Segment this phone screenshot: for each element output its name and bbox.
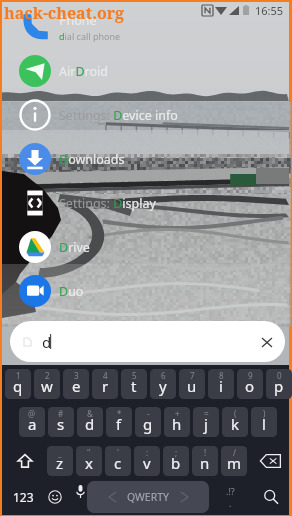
staticText: * <box>117 408 122 419</box>
button[interactable]: Backspace <box>250 446 291 476</box>
staticText: Drive <box>59 239 90 256</box>
button[interactable]: Duo <box>2 269 289 313</box>
staticText: dial call phone <box>59 30 121 42</box>
staticText: ' <box>117 447 119 458</box>
staticText: 8 <box>219 370 224 381</box>
staticText: g <box>143 414 153 434</box>
button[interactable]: 1 <box>5 369 31 399</box>
staticText: + <box>175 408 180 419</box>
button[interactable]: Settings: Display <box>2 181 289 225</box>
button[interactable]: QWERTY <box>87 481 209 513</box>
button[interactable]: 6 <box>150 369 176 399</box>
button[interactable]: ( <box>222 407 248 437</box>
button[interactable]: d <box>10 321 285 362</box>
button[interactable]: Shift <box>5 446 44 476</box>
staticText: f <box>116 414 122 434</box>
button[interactable]: 7 <box>179 369 205 399</box>
staticText: Settings: Display <box>59 195 156 212</box>
staticText: c <box>114 453 122 473</box>
staticText: AirDroid <box>59 63 108 80</box>
button[interactable]: + <box>164 407 190 437</box>
button[interactable]: ) <box>251 407 277 437</box>
staticText: y <box>159 376 167 396</box>
staticText: 5 <box>132 370 137 381</box>
staticText: m <box>227 453 242 473</box>
button[interactable]: AirDroid <box>2 49 289 93</box>
staticText: 7 <box>190 370 195 381</box>
staticText: _ <box>58 447 62 458</box>
button[interactable]: - <box>135 407 161 437</box>
button[interactable]: Downloads <box>2 137 289 181</box>
button[interactable]: " <box>76 446 102 476</box>
staticText: 123 <box>13 489 34 505</box>
staticText: .!? <box>226 485 235 497</box>
staticText: @ <box>28 408 36 419</box>
button[interactable]: ; <box>163 446 189 476</box>
staticText: r <box>102 376 109 396</box>
staticText: 4 <box>103 370 108 381</box>
button[interactable]: : <box>134 446 160 476</box>
staticText: 1 <box>16 370 21 381</box>
button[interactable]: 9 <box>237 369 263 399</box>
staticText: ) <box>263 408 266 419</box>
staticText: l <box>262 414 266 434</box>
staticText: # <box>58 408 64 419</box>
staticText: 2 <box>45 370 50 381</box>
staticText: = <box>204 408 209 419</box>
button[interactable]: Drive <box>2 225 289 269</box>
button[interactable]: Voice input <box>69 477 91 505</box>
button[interactable]: & <box>77 407 103 437</box>
staticText: ( <box>234 408 237 419</box>
staticText: h <box>172 414 182 434</box>
button[interactable]: Clear search <box>252 327 282 357</box>
staticText: q <box>13 376 23 396</box>
staticText: o <box>245 376 255 396</box>
staticText: k <box>231 414 240 434</box>
staticText: 3 <box>74 370 79 381</box>
staticText: . <box>229 497 232 509</box>
button[interactable]: * <box>106 407 132 437</box>
button[interactable]: 0 <box>266 369 292 399</box>
button[interactable]: 8 <box>208 369 234 399</box>
staticText: e <box>72 376 81 396</box>
button[interactable]: Emoji <box>41 482 69 512</box>
button[interactable]: Settings: Device info <box>2 93 289 137</box>
staticText: i <box>219 376 223 396</box>
staticText: t <box>131 376 137 396</box>
button[interactable]: Phone <box>2 5 289 49</box>
button[interactable]: ' <box>105 446 131 476</box>
button[interactable]: _ <box>47 446 73 476</box>
staticText: 0 <box>277 370 282 381</box>
button[interactable]: 5 <box>121 369 147 399</box>
button[interactable]: .!? <box>209 482 251 512</box>
staticText: j <box>204 414 208 434</box>
button[interactable]: # <box>48 407 74 437</box>
button[interactable]: = <box>193 407 219 437</box>
staticText: d <box>85 414 95 434</box>
staticText: Downloads <box>59 151 125 168</box>
staticText: Duo <box>59 283 84 300</box>
staticText: u <box>187 376 197 396</box>
staticText: w <box>41 376 53 396</box>
button[interactable]: ! <box>192 446 218 476</box>
staticText: z <box>56 453 64 473</box>
button[interactable]: Search <box>251 482 291 512</box>
staticText: p <box>274 376 284 396</box>
button[interactable]: 3 <box>63 369 89 399</box>
button[interactable]: 4 <box>92 369 118 399</box>
staticText: hack-cheat.org <box>4 2 125 24</box>
staticText: ! <box>204 447 207 458</box>
button[interactable]: / <box>221 446 247 476</box>
button[interactable]: @ <box>19 407 45 437</box>
staticText: n <box>200 453 210 473</box>
button[interactable]: 123 <box>5 482 41 512</box>
staticText: ; <box>175 447 178 458</box>
staticText: v <box>143 453 151 473</box>
staticText: / <box>233 447 236 458</box>
button[interactable]: 2 <box>34 369 60 399</box>
staticText: 16:55 <box>255 3 284 18</box>
staticText: d <box>42 332 52 352</box>
staticText: : <box>146 447 149 458</box>
staticText: " <box>87 447 91 458</box>
staticText: 6 <box>161 370 166 381</box>
